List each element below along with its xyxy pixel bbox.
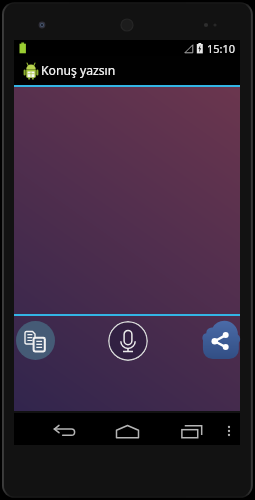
staticText: Konuş yazsın xyxy=(41,62,116,79)
button[interactable]: Copy xyxy=(16,321,55,360)
button[interactable]: More options xyxy=(218,415,239,447)
staticText: 15:10 xyxy=(207,41,236,56)
button[interactable]: Share xyxy=(201,322,240,359)
button[interactable]: Back xyxy=(50,415,79,447)
button[interactable]: Recent apps xyxy=(177,415,206,447)
button[interactable]: Home xyxy=(113,415,142,447)
button[interactable]: Speak xyxy=(108,321,148,361)
